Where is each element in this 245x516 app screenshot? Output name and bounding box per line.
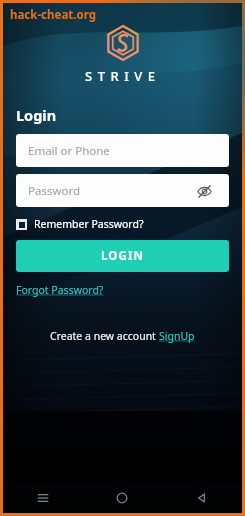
staticText: Password (28, 183, 81, 199)
staticText: LOGIN (101, 248, 144, 264)
button[interactable]: Show password (191, 178, 217, 204)
staticText: Create a new account (50, 329, 159, 343)
button[interactable]: Home (82, 483, 162, 513)
staticText: Forgot Password? (16, 283, 104, 297)
staticText: Remember Password? (34, 217, 144, 231)
button[interactable]: Back (162, 483, 242, 513)
staticText: Login (16, 105, 57, 125)
button[interactable]: Password (16, 174, 229, 207)
button[interactable]: Remember Password? (16, 215, 144, 233)
button[interactable]: LOGIN (16, 240, 229, 272)
button[interactable]: Email or Phone (16, 134, 229, 167)
button[interactable]: Forgot Password? (16, 283, 104, 297)
staticText: STRIVE (85, 67, 161, 85)
staticText: hack-cheat.org (10, 7, 96, 23)
staticText: SignUp (159, 329, 195, 343)
button[interactable]: SignUp (159, 329, 195, 343)
button[interactable]: Recent apps (3, 483, 82, 513)
staticText: Email or Phone (28, 143, 110, 159)
